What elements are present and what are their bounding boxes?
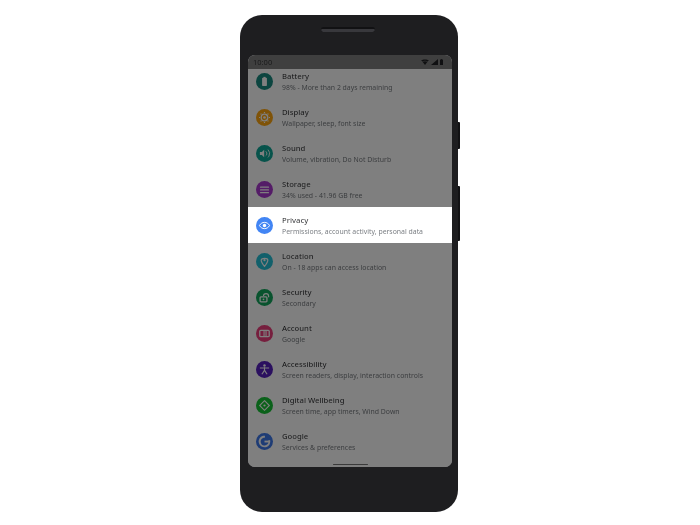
staticText: Google (282, 335, 306, 344)
staticText: Secondary (282, 299, 316, 308)
button[interactable]: Security (248, 279, 452, 315)
staticText: Battery (282, 71, 310, 81)
staticText: Display (282, 107, 309, 117)
staticText: Location (282, 251, 314, 261)
button[interactable]: Accessibility (248, 351, 452, 387)
staticText: Volume, vibration, Do Not Disturb (282, 155, 392, 164)
staticText: On - 18 apps can access location (282, 263, 387, 272)
staticText: Account (282, 323, 312, 333)
button[interactable]: Digital Wellbeing (248, 387, 452, 423)
button[interactable]: Storage (248, 171, 452, 207)
staticText: Wallpaper, sleep, font size (282, 119, 366, 128)
staticText: 98% - More than 2 days remaining (282, 83, 393, 92)
staticText: Screen time, app timers, Wind Down (282, 407, 400, 416)
staticText: Storage (282, 179, 311, 189)
button[interactable]: Sound (248, 135, 452, 171)
staticText: Accessibility (282, 359, 327, 369)
staticText: Security (282, 287, 312, 297)
staticText: Privacy (282, 215, 309, 225)
button[interactable]: Google (248, 423, 452, 459)
button[interactable]: Display (248, 99, 452, 135)
button[interactable]: Account (248, 315, 452, 351)
staticText: 34% used - 41.96 GB free (282, 191, 363, 200)
button[interactable]: Battery (248, 63, 452, 99)
staticText: 10:00 (253, 57, 273, 67)
staticText: Permissions, account activity, personal … (282, 227, 423, 236)
button[interactable]: Location (248, 243, 452, 279)
staticText: Digital Wellbeing (282, 395, 345, 405)
staticText: Services & preferences (282, 443, 356, 452)
staticText: Sound (282, 143, 306, 153)
button[interactable]: Privacy (248, 207, 452, 243)
staticText: Screen readers, display, interaction con… (282, 371, 424, 380)
staticText: Google (282, 431, 309, 441)
